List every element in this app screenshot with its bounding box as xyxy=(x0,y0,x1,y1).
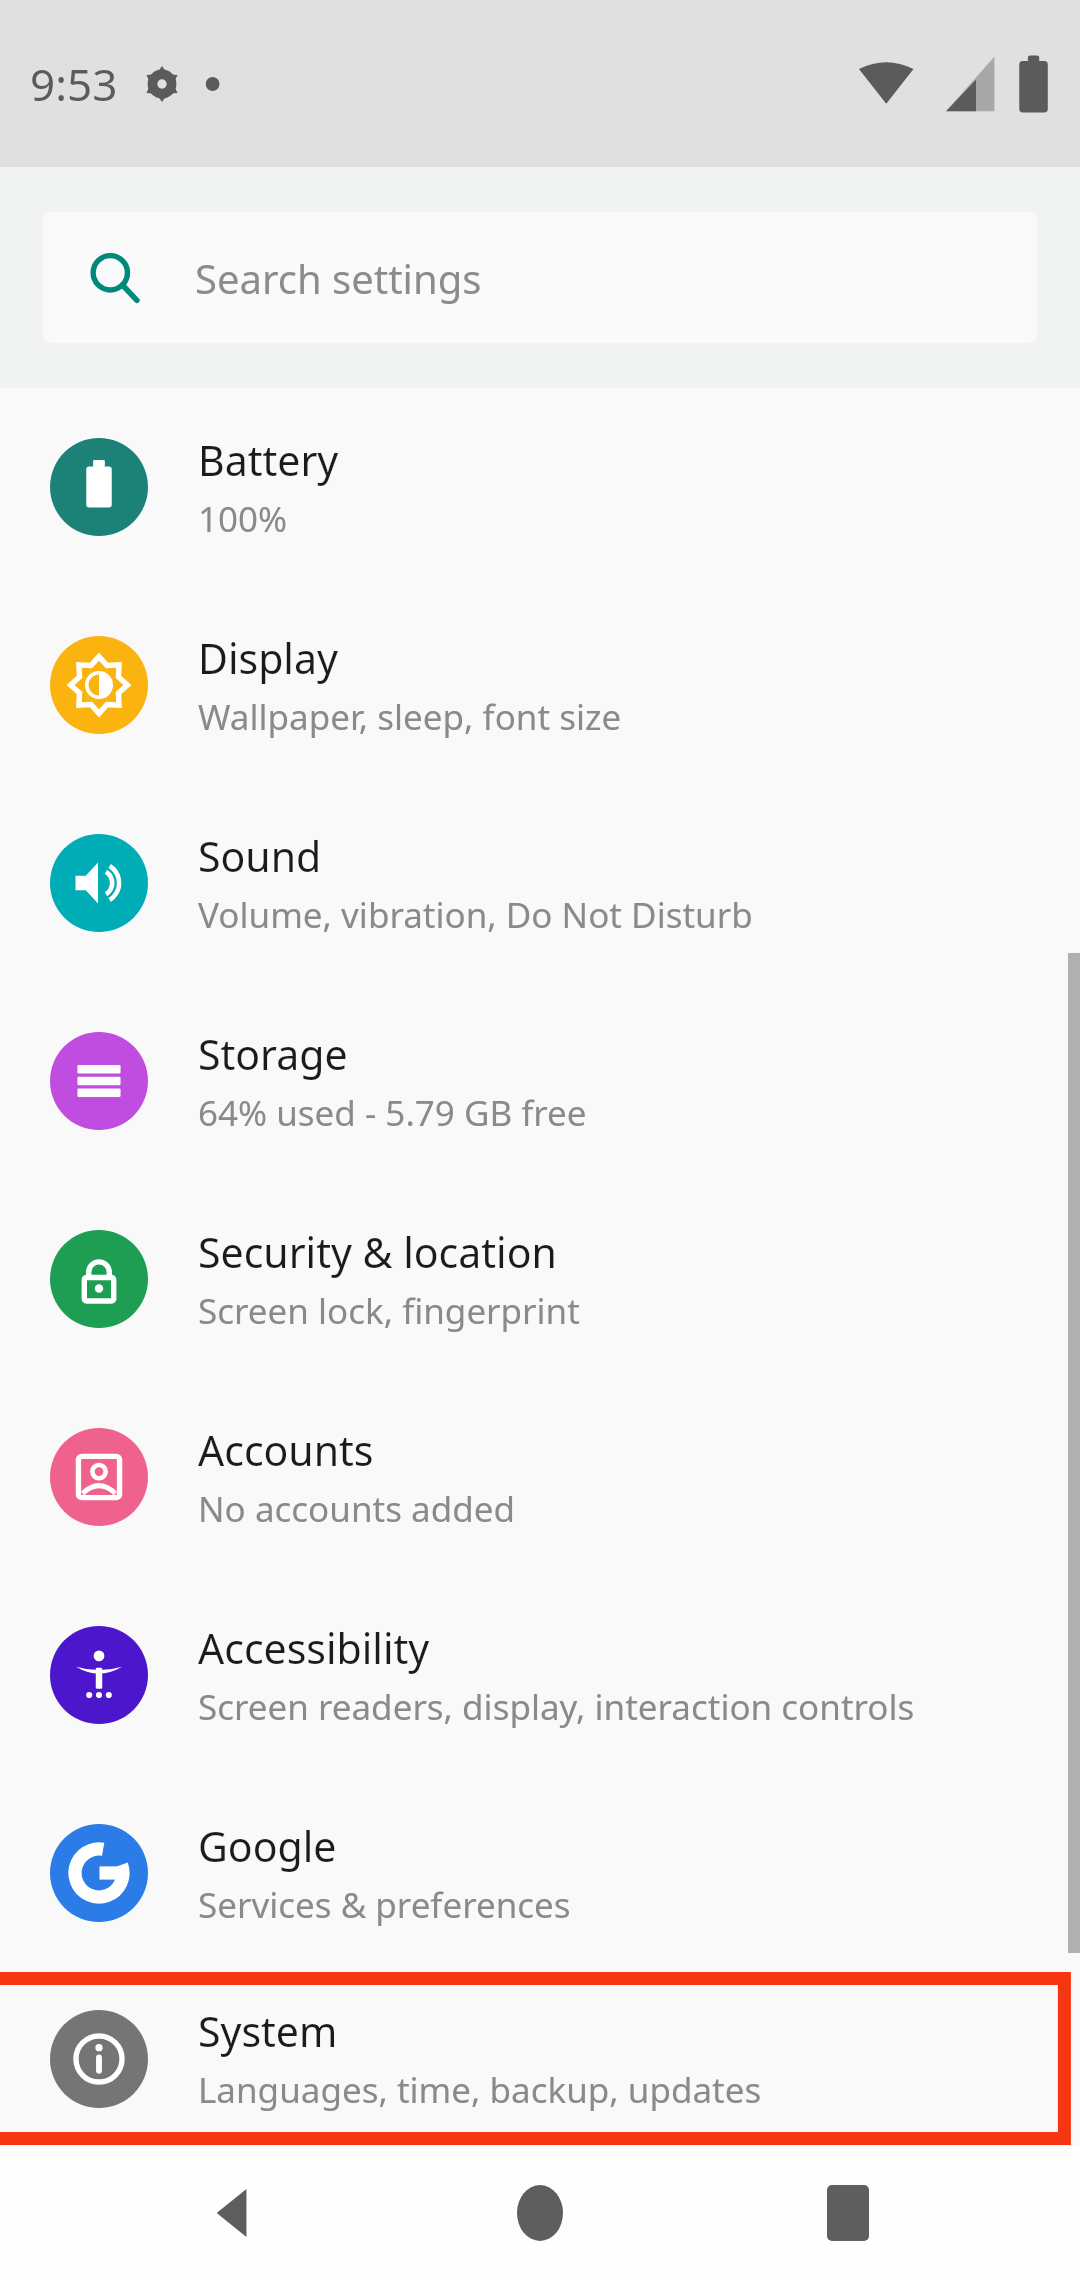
staticText: Display xyxy=(198,630,338,686)
staticText: 64% used - 5.79 GB free xyxy=(198,1089,587,1137)
button[interactable]: Sound xyxy=(0,784,1080,982)
button[interactable]: Recent apps xyxy=(773,2145,923,2280)
button[interactable]: Storage xyxy=(0,982,1080,1180)
staticText: Search settings xyxy=(195,251,482,305)
button[interactable]: Accessibility xyxy=(0,1576,1080,1774)
staticText: 9:53 xyxy=(30,54,118,114)
staticText: System xyxy=(198,2003,338,2059)
staticText: No accounts added xyxy=(198,1485,515,1533)
staticText: Accounts xyxy=(198,1422,374,1478)
button[interactable]: Security & location xyxy=(0,1180,1080,1378)
staticText: Screen lock, fingerprint xyxy=(198,1287,580,1335)
button[interactable]: Google xyxy=(0,1774,1080,1972)
button[interactable]: Search settings xyxy=(43,212,1037,343)
staticText: Wallpaper, sleep, font size xyxy=(198,693,622,741)
button[interactable]: Home xyxy=(465,2145,615,2280)
button[interactable]: Back xyxy=(158,2145,308,2280)
staticText: Languages, time, backup, updates xyxy=(198,2066,762,2114)
staticText: Accessibility xyxy=(198,1620,430,1676)
button[interactable]: Battery xyxy=(0,388,1080,586)
staticText: Sound xyxy=(198,828,322,884)
staticText: Storage xyxy=(198,1026,348,1082)
staticText: Volume, vibration, Do Not Disturb xyxy=(198,891,753,939)
button[interactable]: Accounts xyxy=(0,1378,1080,1576)
staticText: 100% xyxy=(198,495,288,543)
staticText: Screen readers, display, interaction con… xyxy=(198,1683,915,1731)
button[interactable]: System xyxy=(0,1972,1080,2145)
staticText: Security & location xyxy=(198,1224,557,1280)
button[interactable]: Display xyxy=(0,586,1080,784)
staticText: Google xyxy=(198,1818,337,1874)
staticText: Services & preferences xyxy=(198,1881,571,1929)
staticText: Battery xyxy=(198,432,339,488)
